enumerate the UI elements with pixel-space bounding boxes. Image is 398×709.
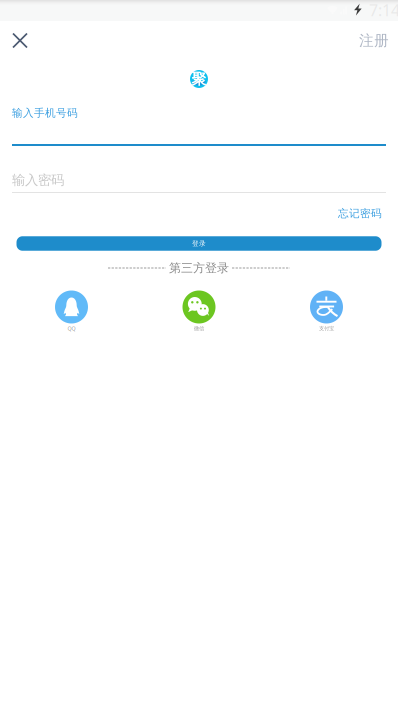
staticText: 注册 [359, 31, 389, 49]
staticText: 第三方登录 [169, 261, 229, 275]
button[interactable]: 支付宝 [298, 290, 354, 332]
staticText: 7:14 [369, 0, 398, 21]
button[interactable]: 微信 [171, 290, 227, 332]
staticText: 聚 [191, 70, 206, 88]
staticText: 忘记密码 [338, 207, 382, 220]
staticText: 输入手机号码 [12, 106, 78, 119]
staticText: 输入密码 [12, 172, 64, 188]
staticText: QQ [67, 325, 75, 332]
button[interactable]: Close [0, 23, 40, 57]
button[interactable]: 登录 [16, 236, 381, 251]
staticText: 微信 [194, 325, 204, 332]
button[interactable]: QQ [43, 290, 99, 332]
staticText: 登录 [192, 239, 206, 248]
staticText: 支付宝 [319, 325, 334, 332]
button[interactable]: 忘记密码 [302, 205, 382, 221]
button[interactable]: 注册 [350, 23, 398, 57]
